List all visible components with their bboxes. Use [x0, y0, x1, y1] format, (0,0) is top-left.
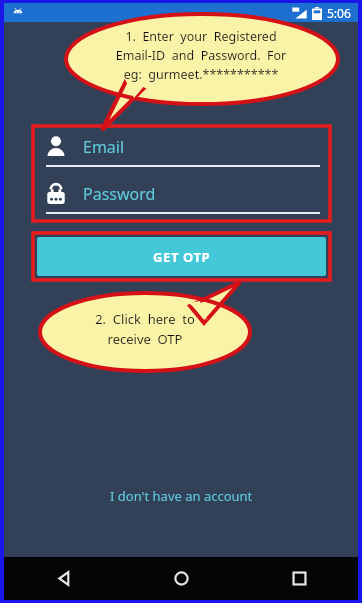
staticText: I don't have an account — [110, 487, 253, 505]
button[interactable]: GET OTP — [37, 237, 326, 276]
staticText: GET OTP — [153, 248, 211, 266]
button[interactable]: Password — [43, 176, 322, 214]
staticText: 5:06 — [327, 5, 351, 21]
button[interactable]: Recent apps — [240, 557, 358, 600]
button[interactable]: Email — [43, 129, 322, 167]
staticText: Email — [83, 136, 125, 158]
button[interactable]: Back — [4, 557, 122, 600]
staticText: 2. Click here to receive OTP — [51, 310, 239, 348]
staticText: 1. Enter your Registered Email-ID and Pa… — [76, 28, 326, 83]
button[interactable]: I don't have an account — [100, 483, 263, 509]
button[interactable]: Home — [122, 557, 240, 600]
staticText: Password — [83, 183, 156, 205]
